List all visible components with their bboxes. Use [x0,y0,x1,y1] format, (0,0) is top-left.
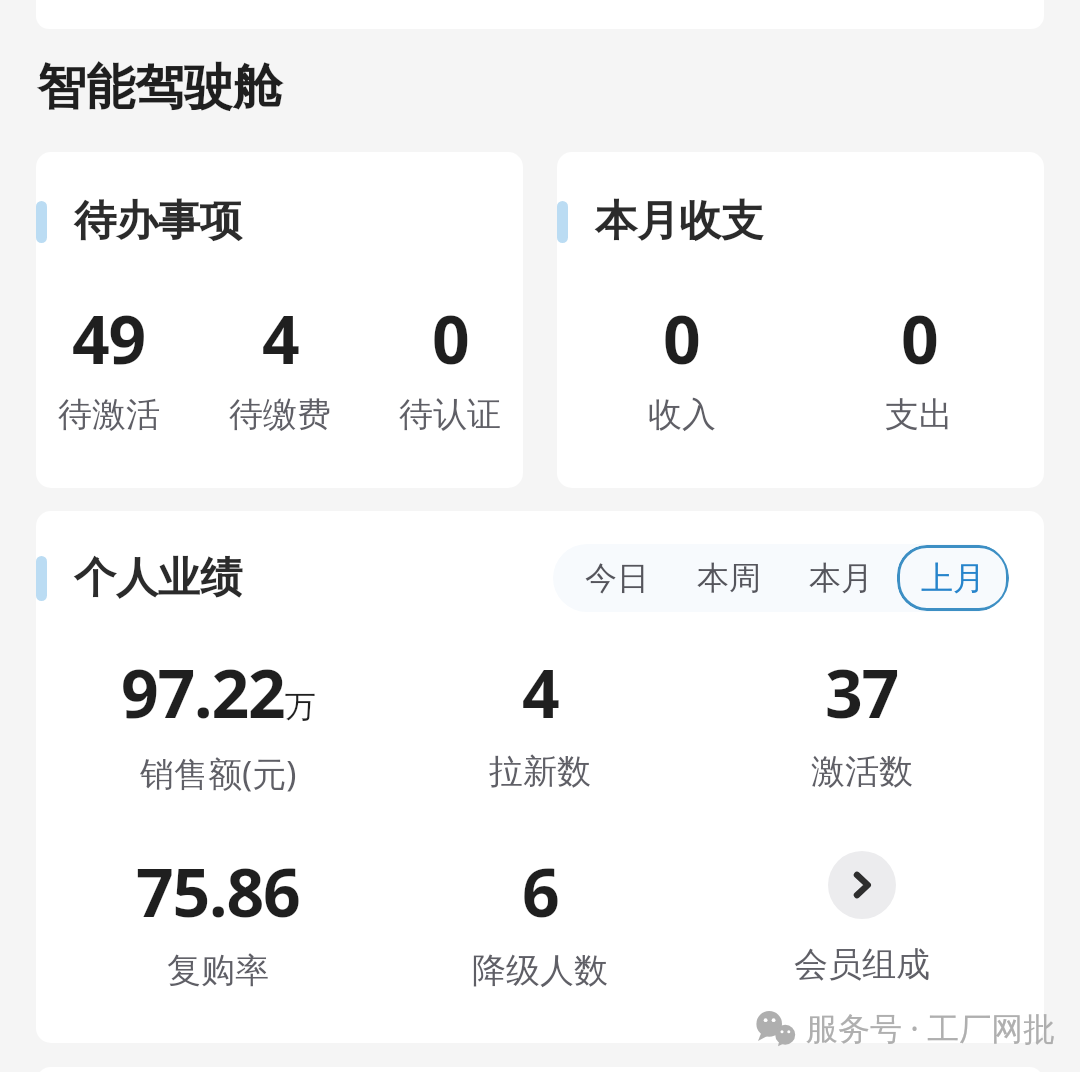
button[interactable]: 上月 [921,558,985,598]
button[interactable]: 4 [229,293,331,436]
staticText: 待激活 [58,393,160,436]
button[interactable]: 待办事项 [36,152,523,488]
staticText: 待认证 [399,393,501,436]
button[interactable]: 本月 [809,558,873,598]
staticText: 待办事项 [74,195,242,248]
button[interactable]: 今日 [585,558,649,598]
staticText: 49 [72,293,146,383]
staticText: 个人业绩 [74,552,242,605]
button[interactable]: 75.86 [57,846,379,992]
staticText: 上月 [921,558,985,598]
button[interactable]: 6 [379,846,701,992]
staticText: 37 [825,647,899,737]
staticText: 本月 [809,558,873,598]
button[interactable]: 97.22 [57,647,379,796]
staticText: 本周 [697,558,761,598]
staticText: 4 [262,293,299,383]
button[interactable]: 会员组成 [828,851,896,919]
button[interactable]: 49 [58,293,160,436]
staticText: 会员组成 [794,943,930,986]
staticText: 服务号 · 工厂网批 [806,1006,1056,1050]
staticText: 待缴费 [229,393,331,436]
staticText: 4 [522,647,559,737]
button[interactable]: 0 [399,293,501,436]
staticText: 支出 [885,393,953,436]
staticText: 0 [901,293,938,383]
staticText: 97.22 [121,647,285,737]
staticText: 今日 [585,558,649,598]
button[interactable]: 37 [701,647,1023,793]
button[interactable]: 4 [379,647,701,793]
staticText: 6 [522,846,559,936]
staticText: 0 [432,293,469,383]
button[interactable]: 0 [800,293,1038,436]
staticText: 智能驾驶舱 [37,57,282,119]
staticText: 复购率 [167,949,269,992]
staticText: 拉新数 [489,750,591,793]
staticText: 本月收支 [595,195,763,248]
button[interactable]: 0 [563,293,800,436]
staticText: 万 [285,687,316,726]
staticText: 激活数 [811,750,913,793]
staticText: 75.86 [136,846,300,936]
button[interactable]: 本月收支 [557,152,1044,488]
staticText: 降级人数 [472,949,608,992]
button[interactable]: 本周 [697,558,761,598]
staticText: 0 [663,293,700,383]
staticText: 销售额(元) [140,750,297,796]
staticText: 收入 [648,393,716,436]
